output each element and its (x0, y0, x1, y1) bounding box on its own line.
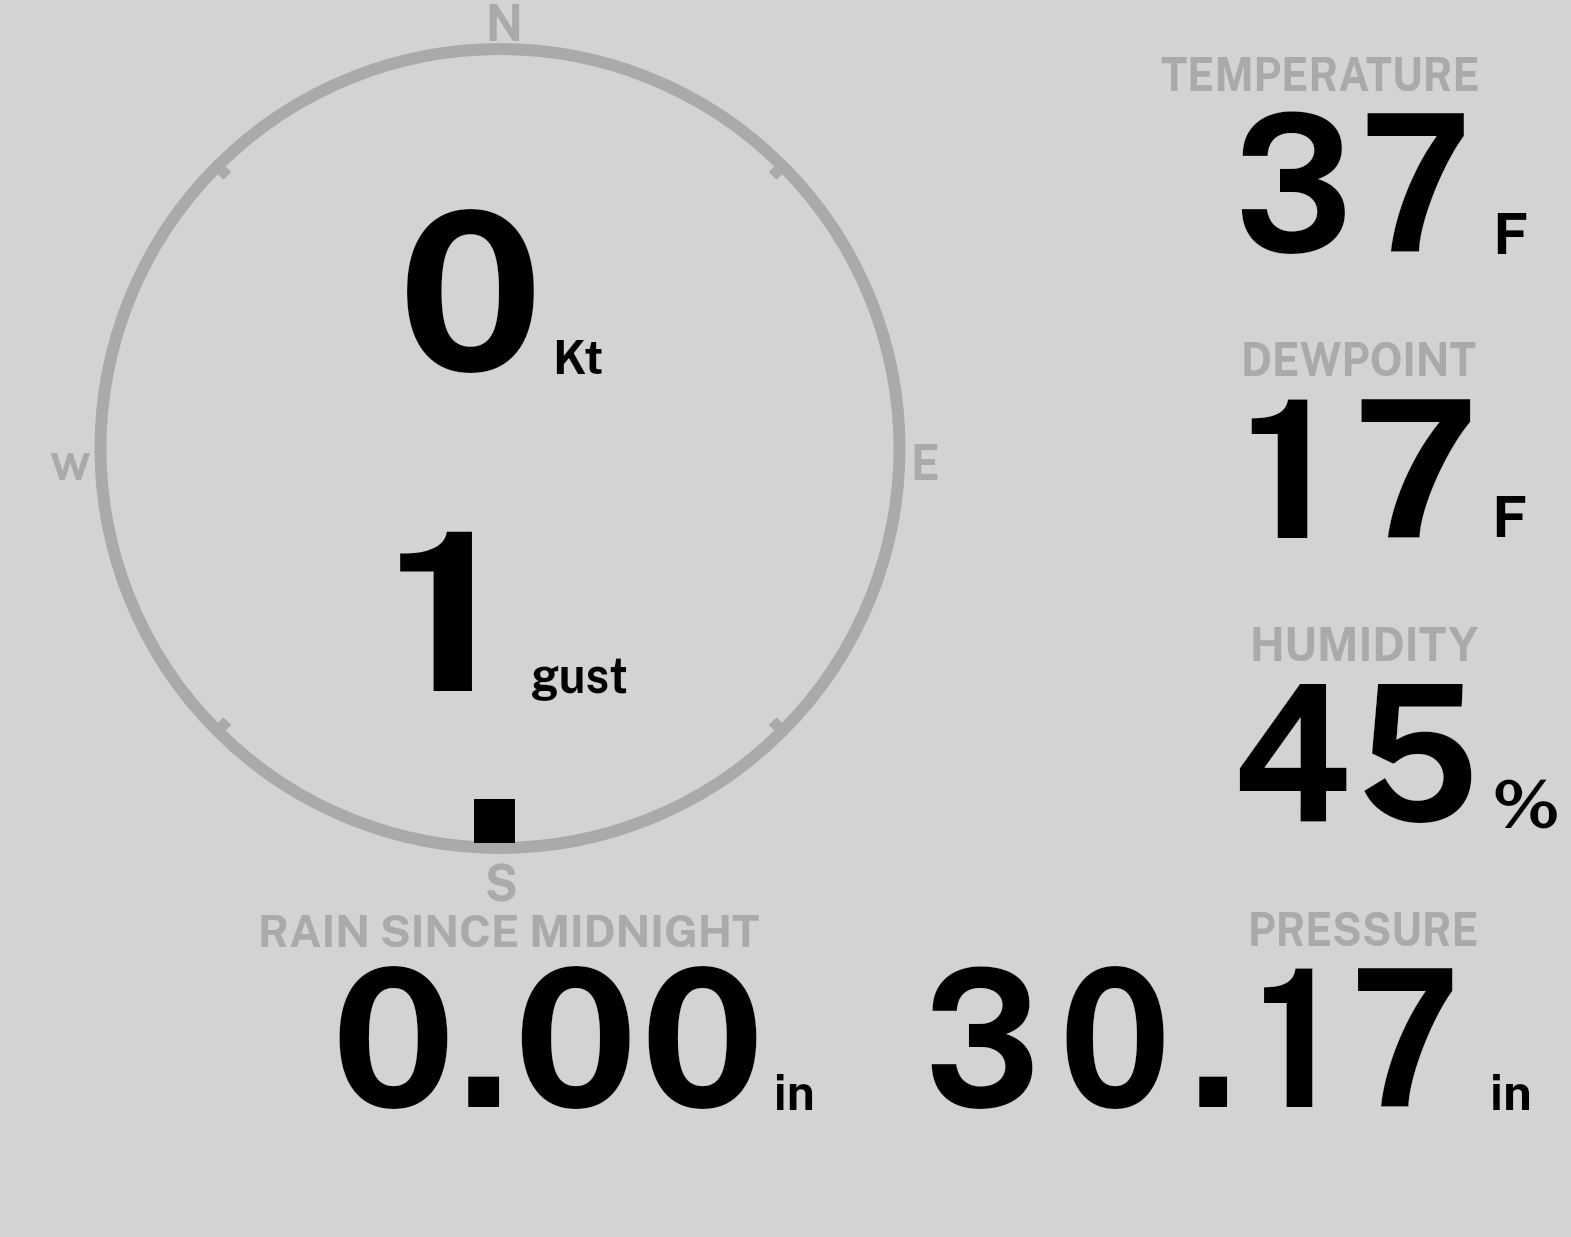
staticText: 0 (397, 163, 545, 420)
staticText: HUMIDITY (1250, 617, 1479, 671)
staticText: F (1492, 483, 1528, 549)
staticText: TEMPERATURE (1161, 47, 1480, 101)
button[interactable]: Wind direction compass (60, 0, 960, 900)
staticText: F (1493, 200, 1529, 266)
staticText: PRESSURE (1248, 902, 1479, 956)
staticText: % (1492, 765, 1561, 843)
staticText: 37 (1234, 71, 1482, 295)
staticText: RAIN SINCE MIDNIGHT (258, 905, 760, 957)
staticText: 0.00 (331, 925, 768, 1150)
staticText: DEWPOINT (1241, 332, 1476, 386)
staticText: 30.17 (924, 925, 1479, 1150)
staticText: N (486, 0, 523, 53)
staticText: in (774, 1062, 815, 1121)
staticText: S (485, 853, 518, 912)
staticText: 1 (389, 482, 501, 741)
staticText: W (50, 443, 91, 488)
staticText: 17 (1243, 356, 1503, 581)
staticText: 45 (1232, 641, 1486, 864)
staticText: in (1490, 1062, 1533, 1121)
staticText: E (911, 433, 940, 491)
staticText: Kt (553, 329, 604, 384)
staticText: gust (531, 644, 628, 704)
